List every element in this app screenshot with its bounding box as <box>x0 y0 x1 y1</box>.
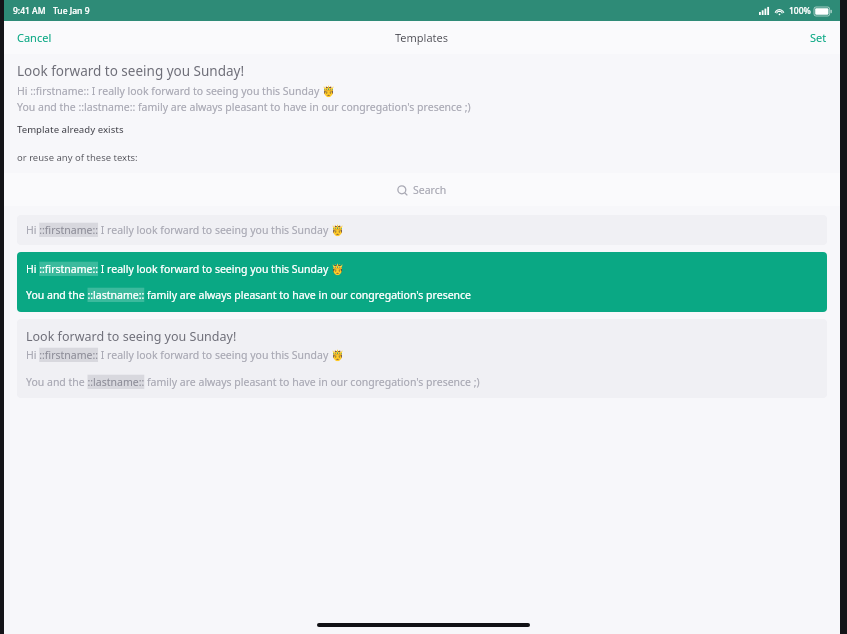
staticText: You and the ::lastname:: family are alwa… <box>17 100 471 114</box>
staticText: Tue Jan 9 <box>53 5 90 17</box>
staticText: Look forward to seeing you Sunday! <box>17 62 245 80</box>
staticText: 100% <box>789 5 811 17</box>
staticText: Templates <box>395 30 449 45</box>
staticText: Look forward to seeing you Sunday! <box>26 328 237 345</box>
button[interactable]: Search <box>4 173 840 206</box>
button[interactable]: Cancel <box>4 24 65 51</box>
staticText: You and the ::lastname:: family are alwa… <box>26 375 480 389</box>
staticText: Hi ::firstname:: I really look forward t… <box>26 348 345 362</box>
staticText: Hi ::firstname:: I really look forward t… <box>26 262 345 276</box>
staticText: Search <box>413 183 447 197</box>
staticText: You and the ::lastname:: family are alwa… <box>26 288 472 302</box>
staticText: Cancel <box>17 30 52 45</box>
staticText: Hi ::firstname:: I really look forward t… <box>17 84 336 98</box>
staticText: 9:41 AM <box>13 5 46 17</box>
button[interactable]: Look forward to seeing you Sunday! <box>17 319 827 398</box>
staticText: or reuse any of these texts: <box>17 151 138 164</box>
staticText: Template already exists <box>17 123 124 136</box>
staticText: Hi ::firstname:: I really look forward t… <box>26 223 345 237</box>
button[interactable]: Hi ::firstname:: I really look forward t… <box>17 252 827 312</box>
staticText: Set <box>810 30 827 45</box>
button[interactable]: Hi ::firstname:: I really look forward t… <box>17 215 827 245</box>
button[interactable]: Set <box>797 24 840 51</box>
